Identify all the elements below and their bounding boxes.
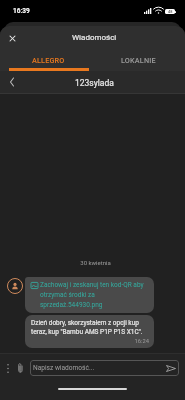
staticText: Zachowaj i zeskanuj ten kod-QR aby otrzy… <box>40 281 149 309</box>
staticText: 123sylada <box>75 78 114 88</box>
staticText: 16:39 <box>13 7 30 15</box>
button[interactable]: Zachowaj i zeskanuj ten kod-QR aby otrzy… <box>25 277 154 313</box>
button[interactable]: Napisz wiadomość... <box>30 360 179 376</box>
button[interactable]: More options <box>3 361 12 375</box>
staticText: 48 <box>168 9 173 14</box>
staticText: Napisz wiadomość... <box>33 364 95 372</box>
button[interactable]: Dzień dobry, skorzystałem z opcji kup te… <box>25 315 154 348</box>
button[interactable]: LOKALNIE <box>93 54 183 67</box>
staticText: 30 kwietnia <box>6 259 185 266</box>
button[interactable]: Back <box>3 73 21 91</box>
button[interactable]: Attach file <box>14 361 27 374</box>
staticText: Wiadomości <box>72 33 117 42</box>
staticText: Dzień dobry, skorzystałem z opcji kup te… <box>31 319 149 336</box>
staticText: 16:24 <box>31 338 149 345</box>
button[interactable]: Close <box>4 30 21 47</box>
staticText: LOKALNIE <box>121 56 156 65</box>
button[interactable]: Send <box>165 362 177 374</box>
staticText: ALLEGRO <box>32 56 65 65</box>
button[interactable]: ALLEGRO <box>3 54 93 67</box>
